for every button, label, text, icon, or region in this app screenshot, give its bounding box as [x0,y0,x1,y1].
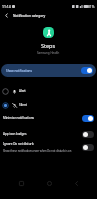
staticText: Notification category [13,14,46,18]
staticText: Show notifications [6,69,32,73]
staticText: Show these notifications even when Do no… [3,149,72,153]
staticText: 81% [88,5,95,9]
staticText: Minimise notifications [3,116,35,120]
staticText: 11:14 [2,4,11,9]
staticText: Samsung Health [37,51,60,55]
staticText: Steps [41,42,56,49]
button[interactable]: Alert [0,84,97,98]
staticText: App icon badges [3,132,27,136]
button[interactable]: Ignore Do not disturb [0,138,97,156]
staticText: Silent [19,103,27,107]
button[interactable]: Back [1,10,12,21]
button[interactable]: Back [69,176,83,190]
button[interactable]: Show notifications [1,64,96,77]
button[interactable]: Minimise notifications [0,111,97,125]
button[interactable]: Recents [14,176,28,190]
staticText: Alert [19,89,26,93]
button[interactable]: App icon badges [0,127,97,141]
button[interactable]: Home [42,176,56,190]
staticText: Ignore Do not disturb [3,142,34,146]
button[interactable]: Silent [0,98,97,112]
